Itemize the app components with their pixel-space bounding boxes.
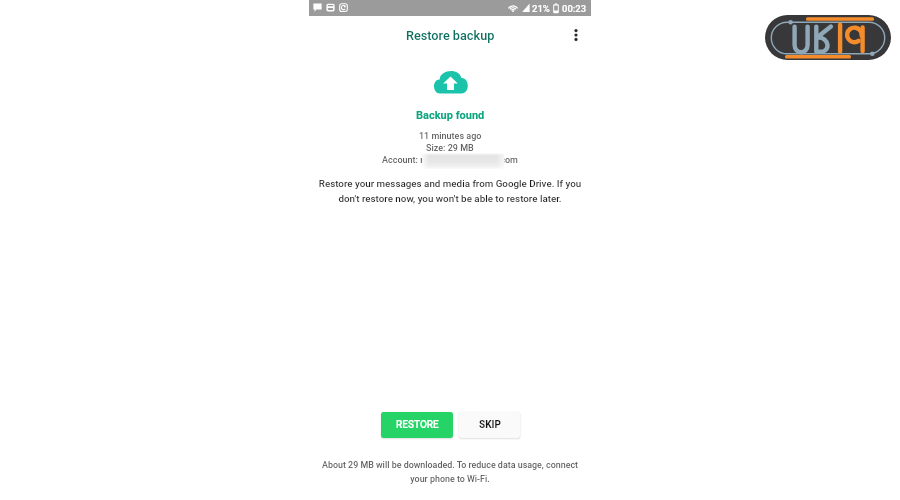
staticText: RESTORE — [396, 419, 439, 431]
button[interactable]: RESTORE — [381, 412, 453, 438]
staticText: Backup found — [416, 109, 485, 122]
staticText: About 29 MB will be downloaded. To reduc… — [315, 460, 585, 484]
staticText: 00:23 — [562, 3, 587, 14]
staticText: 11 minutes ago — [419, 131, 482, 142]
staticText: 21% — [532, 3, 550, 14]
button[interactable]: SKIP — [459, 412, 520, 438]
button[interactable]: More options — [564, 23, 588, 47]
staticText: Restore your messages and media from Goo… — [315, 178, 585, 204]
staticText: Restore backup — [406, 28, 495, 43]
staticText: Account: nxxxxxxxxxxxxxxxx.com — [382, 155, 518, 166]
staticText: Size: 29 MB — [426, 143, 474, 154]
staticText: SKIP — [479, 419, 501, 431]
